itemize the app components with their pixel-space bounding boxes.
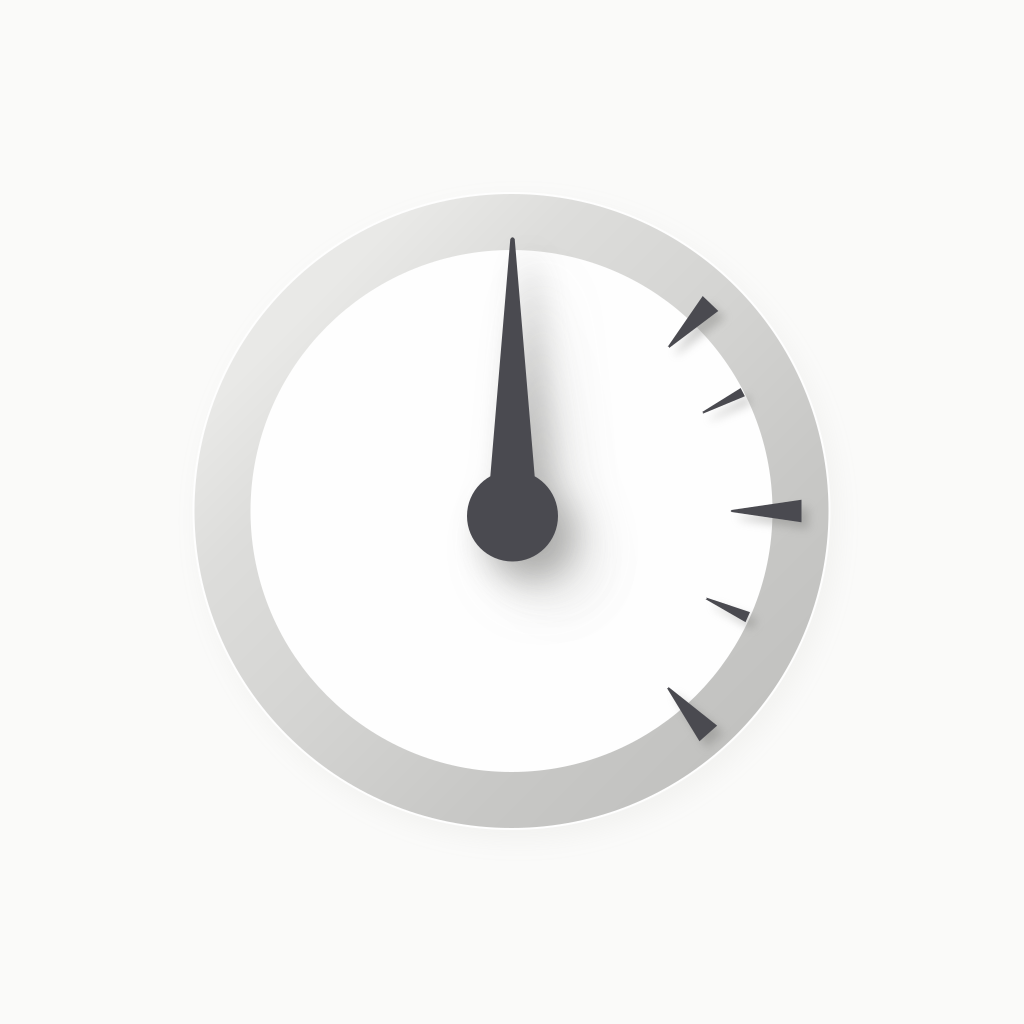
button[interactable]: Timer dial, zero minutes elapsed [0,0,1024,1024]
